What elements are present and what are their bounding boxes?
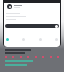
button[interactable]: Orders [39,38,42,41]
button[interactable]: Search [22,38,25,41]
button[interactable] [5,24,59,28]
button[interactable]: Home [6,38,9,41]
button[interactable]: Profile [7,4,12,9]
button[interactable]: Account [55,38,58,41]
